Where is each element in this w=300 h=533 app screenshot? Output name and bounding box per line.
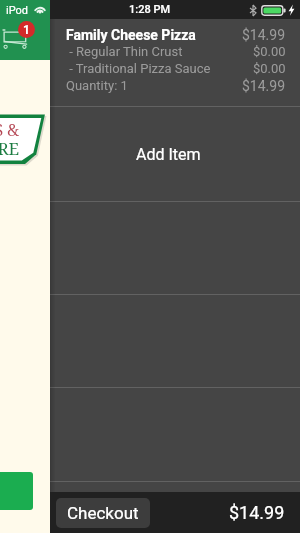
staticText: - Regular Thin Crust [66,44,183,59]
staticText: $14.99 [229,502,285,523]
button[interactable]: Checkout [56,498,150,528]
staticText: iPod [6,4,29,17]
staticText: 1:28 PM [129,3,171,16]
staticText: 1 [23,23,30,37]
staticText: Add Item [136,145,201,164]
staticText: Family Cheese Pizza [66,27,196,43]
staticText: $0.00 [253,44,286,59]
staticText: $0.00 [253,61,286,76]
staticText: PIES & [0,119,42,141]
staticText: Checkout [67,503,139,523]
staticText: $14.99 [242,78,286,94]
staticText: Quantity: 1 [66,78,128,93]
other: Cart [0,0,50,60]
button[interactable]: Add Item [50,107,300,201]
staticText: MORE [0,137,42,160]
button[interactable]: Family Cheese Pizza [50,19,300,106]
button[interactable]: Order now [0,472,33,510]
staticText: $14.99 [242,27,286,43]
staticText: - Traditional Pizza Sauce [66,61,211,76]
